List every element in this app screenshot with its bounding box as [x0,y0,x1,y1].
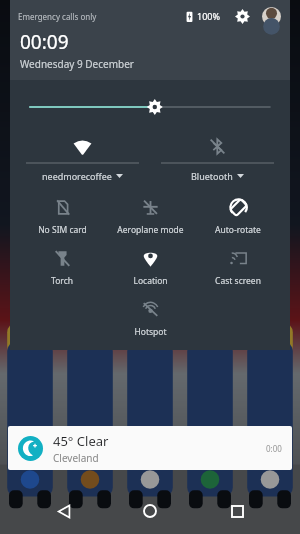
button[interactable]: Recent apps [214,488,260,534]
button[interactable]: Settings [231,5,253,27]
staticText: 45° Clear [53,432,109,450]
button[interactable]: 45° Clear [8,426,292,470]
staticText: 100% [197,10,220,22]
staticText: Torch [51,275,73,287]
staticText: Auto-rotate [215,224,261,236]
button[interactable]: Aeroplane mode [106,194,194,236]
button[interactable]: Cast screen [194,245,282,287]
button[interactable]: Bluetooth [161,132,274,182]
staticText: Location [133,275,168,287]
staticText: Aeroplane mode [117,224,184,236]
button[interactable]: needmorecoffee [26,132,139,182]
button[interactable]: Location [106,245,194,287]
staticText: Bluetooth [191,170,233,182]
button[interactable]: Brightness [10,96,290,118]
staticText: Hotspot [134,326,167,338]
button[interactable]: Back [41,488,87,534]
staticText: Wednesday 9 December [20,57,134,71]
button[interactable]: Home [127,488,173,534]
button[interactable]: Hotspot [106,296,194,338]
staticText: Cleveland [53,451,99,465]
staticText: needmorecoffee [42,170,112,182]
button[interactable]: User profile [260,5,282,27]
button[interactable]: No SIM card [18,194,106,236]
staticText: No SIM card [38,224,87,236]
staticText: 0:00 [266,443,282,454]
staticText: Cast screen [215,275,261,287]
button[interactable]: Torch [18,245,106,287]
staticText: 00:09 [20,29,69,55]
staticText: Emergency calls only [18,11,97,22]
button[interactable]: Auto-rotate [194,194,282,236]
